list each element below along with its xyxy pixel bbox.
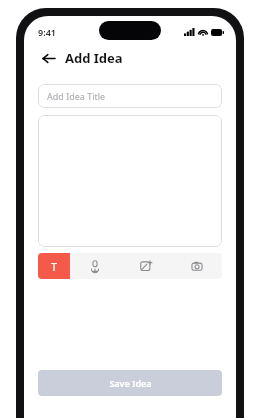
button[interactable] [38, 115, 222, 247]
button[interactable]: Back [38, 48, 58, 68]
button[interactable]: Voice note [70, 253, 120, 279]
staticText: 9:41 [38, 26, 56, 38]
button[interactable]: Save Idea [38, 370, 222, 396]
staticText: Add Idea [65, 49, 123, 67]
staticText: Save Idea [109, 377, 152, 389]
button[interactable]: Camera [171, 253, 222, 279]
button[interactable]: Add Idea Title [38, 84, 222, 108]
button[interactable]: Text [38, 253, 70, 279]
staticText: T [51, 259, 58, 274]
button[interactable]: Add image [120, 253, 171, 279]
staticText: Add Idea Title [47, 90, 106, 102]
